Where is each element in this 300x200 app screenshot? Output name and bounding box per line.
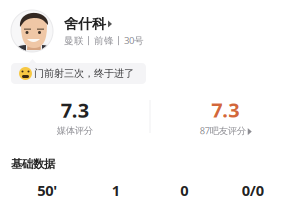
staticText: 0/0 (242, 180, 264, 200)
staticText: 1 (112, 180, 120, 200)
staticText: 0 (180, 180, 188, 200)
button[interactable]: 7.3 (150, 96, 300, 137)
staticText: 基础数据 (11, 157, 55, 171)
staticText: 50' (37, 180, 57, 200)
staticText: 舍什科 (64, 15, 106, 33)
button[interactable]: 舍什科 (0, 0, 300, 52)
staticText: 门前射三次，终于进了 (34, 67, 134, 80)
staticText: 7.3 (211, 96, 239, 123)
staticText: 媒体评分 (57, 125, 93, 136)
staticText: 7.3 (61, 96, 89, 124)
staticText: 87吧友评分 (200, 124, 246, 137)
staticText: 曼联丨前锋丨30号 (64, 34, 144, 47)
